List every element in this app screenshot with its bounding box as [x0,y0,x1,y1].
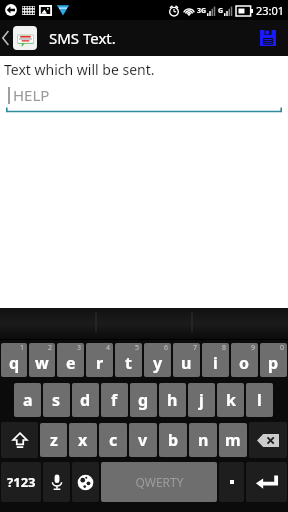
button[interactable]: k [217,383,244,417]
staticText: e [66,352,76,374]
staticText: s [52,389,61,411]
button[interactable]: n [189,423,217,457]
button[interactable]: 2 [29,343,55,377]
button[interactable]: Voice input [43,462,70,502]
button[interactable]: x [69,423,97,457]
button[interactable]: 4 [86,343,113,377]
button[interactable]: Shift [1,422,38,458]
button[interactable]: Period [219,462,244,502]
staticText: 7 [193,343,198,353]
staticText: SMS Text. [49,28,116,48]
staticText: a [23,389,33,411]
staticText: Text which will be sent. [4,60,155,79]
staticText: 0 [280,343,285,353]
button[interactable]: 5 [115,343,142,377]
button[interactable]: 8 [202,343,229,377]
staticText: f [111,389,118,411]
staticText: q [9,352,20,374]
staticText: m [225,429,241,451]
staticText: v [138,429,148,451]
staticText: h [167,389,178,411]
staticText: 23:01 [256,3,285,18]
staticText: 9 [251,343,256,353]
button[interactable]: j [188,383,215,417]
staticText: 2 [48,343,53,353]
staticText: 3 [77,343,82,353]
button[interactable]: c [99,423,127,457]
staticText: G [218,6,224,16]
button[interactable]: l [246,383,273,417]
button[interactable]: ?123 [1,462,41,502]
button[interactable]: 3 [57,343,84,377]
button[interactable]: d [72,383,99,417]
staticText: b [168,429,179,451]
staticText: j [199,389,204,411]
staticText: x [78,429,88,451]
staticText: ?123 [7,473,36,491]
button[interactable]: 6 [144,343,171,377]
button[interactable]: 1 [1,343,27,377]
staticText: 8 [222,343,227,353]
staticText: d [80,389,91,411]
staticText: QWERTY [135,474,184,490]
staticText: 3G [197,6,207,16]
staticText: o [239,352,250,374]
button[interactable]: 0 [260,343,287,377]
button[interactable]: v [129,423,157,457]
button[interactable]: f [101,383,128,417]
staticText: p [268,352,279,374]
staticText: i [213,352,218,374]
button[interactable]: Change language [72,462,99,502]
button[interactable]: HELP [6,85,282,114]
staticText: r [96,352,104,374]
button[interactable]: 7 [173,343,200,377]
staticText: k [226,389,236,411]
staticText: z [50,429,58,451]
button[interactable]: 9 [231,343,258,377]
staticText: n [198,429,209,451]
button[interactable]: m [219,423,247,457]
staticText: t [125,352,132,374]
staticText: y [153,352,163,374]
staticText: 4 [106,343,111,353]
staticText: HELP [13,85,50,105]
button[interactable]: h [159,383,186,417]
button[interactable]: Enter [246,462,287,502]
button[interactable]: b [159,423,187,457]
staticText: 5 [135,343,140,353]
staticText: g [138,389,149,411]
button[interactable]: Save [248,20,288,56]
button[interactable]: a [14,383,41,417]
button[interactable]: g [130,383,157,417]
button[interactable]: s [43,383,70,417]
button[interactable]: Navigate up [0,20,41,56]
staticText: 1 [20,343,25,353]
staticText: w [35,352,49,374]
staticText: 6 [164,343,169,353]
button[interactable]: QWERTY [101,462,217,502]
button[interactable]: z [40,423,67,457]
staticText: c [109,429,118,451]
staticText: u [181,352,192,374]
button[interactable]: Backspace [249,422,287,458]
staticText: l [257,389,262,411]
